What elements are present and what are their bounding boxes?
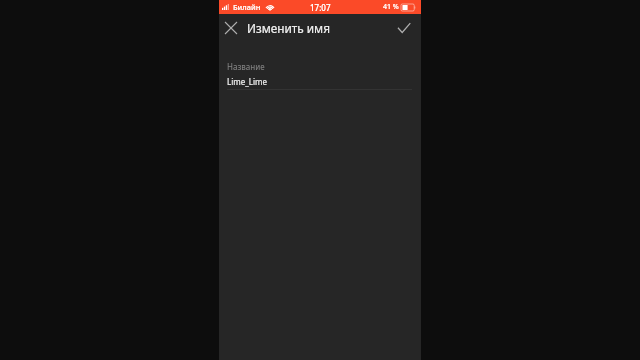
- button[interactable]: Save: [391, 15, 417, 41]
- staticText: Название: [227, 61, 265, 72]
- staticText: 41 %: [383, 2, 399, 12]
- staticText: Билайн: [233, 2, 261, 12]
- button[interactable]: Название: [219, 42, 421, 90]
- staticText: 17:07: [310, 2, 331, 13]
- button[interactable]: Close: [218, 15, 244, 41]
- staticText: Lime_Lime: [227, 76, 268, 87]
- staticText: Изменить имя: [247, 20, 330, 36]
